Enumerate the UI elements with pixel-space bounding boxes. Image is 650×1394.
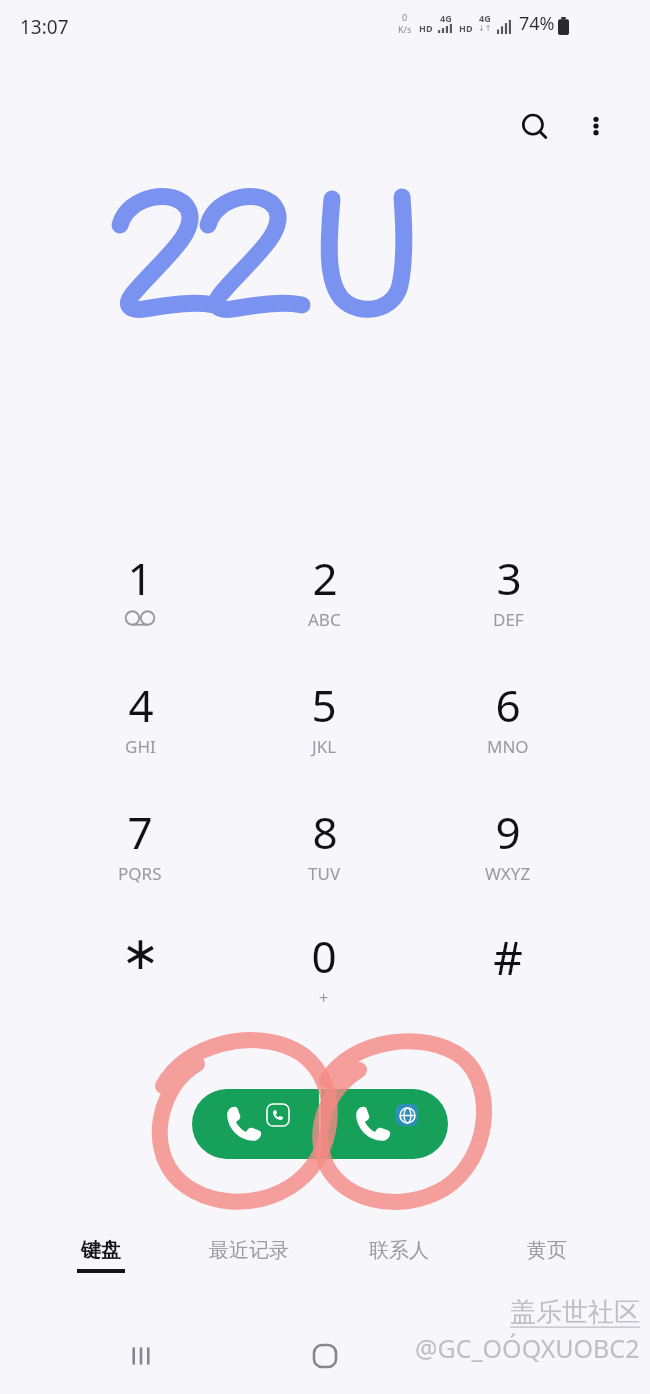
staticText: 7 xyxy=(127,802,153,862)
staticText: 5 xyxy=(311,675,337,735)
staticText: ∗ xyxy=(121,926,160,980)
staticText: # xyxy=(493,926,523,989)
staticText: 0 xyxy=(311,926,337,986)
staticText: 盖乐世社区 xyxy=(510,1296,640,1329)
button[interactable]: 6 xyxy=(442,675,574,779)
staticText: HD xyxy=(419,22,433,34)
button[interactable]: Call with SIM 1 xyxy=(192,1089,319,1159)
button[interactable]: 9 xyxy=(442,802,574,906)
staticText: 4G xyxy=(479,12,491,24)
staticText: 最近记录 xyxy=(209,1238,289,1263)
staticText: MNO xyxy=(487,735,529,758)
button[interactable]: Recents xyxy=(105,1332,177,1380)
staticText: PQRS xyxy=(118,862,162,885)
staticText: K/s xyxy=(398,23,412,35)
button[interactable]: 键盘 xyxy=(27,1238,175,1294)
button[interactable]: 1 xyxy=(74,548,206,652)
staticText: DEF xyxy=(493,608,524,631)
staticText: 13:07 xyxy=(20,14,69,40)
staticText: HD xyxy=(459,22,473,34)
staticText: 2 xyxy=(312,548,338,608)
staticText: JKL xyxy=(312,735,337,758)
staticText: + xyxy=(319,987,329,1009)
button[interactable]: 黄页 xyxy=(473,1238,621,1294)
staticText: 1 xyxy=(127,548,153,608)
staticText: 6 xyxy=(495,675,521,735)
staticText: 键盘 xyxy=(81,1238,121,1263)
staticText: ↓↑ xyxy=(478,24,492,33)
button[interactable]: Search xyxy=(508,100,562,154)
staticText: 74% xyxy=(519,11,555,36)
button[interactable]: Home xyxy=(289,1332,361,1380)
staticText: 黄页 xyxy=(527,1238,567,1263)
staticText: @GC_OÓQXUOBC2 xyxy=(415,1331,640,1365)
button[interactable]: 0 xyxy=(258,926,390,1030)
button[interactable]: 最近记录 xyxy=(175,1238,323,1294)
button[interactable]: 2 xyxy=(258,548,390,652)
staticText: 4G xyxy=(440,12,452,24)
button[interactable]: 4 xyxy=(74,675,206,779)
staticText: ABC xyxy=(308,608,341,631)
staticText: 9 xyxy=(495,802,521,862)
staticText: GHI xyxy=(125,735,156,758)
staticText: TUV xyxy=(308,862,341,885)
button[interactable]: 5 xyxy=(258,675,390,779)
button[interactable]: # xyxy=(442,926,574,1030)
button[interactable]: 8 xyxy=(258,802,390,906)
button[interactable]: ∗ xyxy=(74,926,206,1030)
staticText: 联系人 xyxy=(369,1238,429,1263)
button[interactable]: 联系人 xyxy=(325,1238,473,1294)
staticText: 8 xyxy=(312,802,338,862)
staticText: WXYZ xyxy=(485,862,531,885)
staticText: 4 xyxy=(128,675,154,735)
staticText: 0 xyxy=(402,11,408,23)
button[interactable]: More options xyxy=(570,100,622,152)
button[interactable]: 7 xyxy=(74,802,206,906)
button[interactable]: Internet call xyxy=(321,1089,448,1159)
staticText: 3 xyxy=(496,548,522,608)
button[interactable]: 3 xyxy=(442,548,574,652)
